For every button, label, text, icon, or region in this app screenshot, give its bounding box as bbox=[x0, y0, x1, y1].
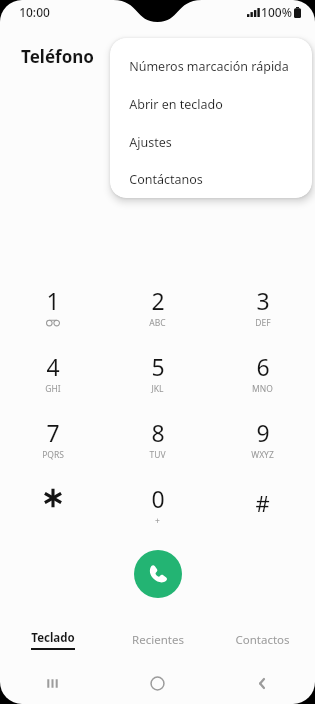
staticText: 100% bbox=[261, 4, 292, 20]
staticText: ABC bbox=[149, 317, 166, 329]
staticText: 5 bbox=[151, 351, 165, 382]
staticText: # bbox=[255, 488, 270, 518]
staticText: TUV bbox=[149, 449, 166, 461]
staticText: WXYZ bbox=[251, 449, 274, 461]
button[interactable]: 0 bbox=[105, 474, 210, 540]
staticText: PQRS bbox=[42, 449, 64, 461]
button[interactable]: Contáctanos bbox=[110, 161, 312, 198]
button[interactable] bbox=[0, 474, 105, 540]
button[interactable]: Recientes bbox=[105, 626, 210, 654]
staticText: MNO bbox=[252, 383, 273, 395]
staticText: 6 bbox=[256, 351, 270, 382]
staticText: 3 bbox=[256, 285, 270, 316]
staticText: 0 bbox=[151, 483, 165, 514]
button[interactable]: 5 bbox=[105, 342, 210, 408]
staticText: 10:00 bbox=[19, 4, 50, 20]
button[interactable]: Call bbox=[134, 550, 182, 598]
staticText: 7 bbox=[46, 417, 60, 448]
button[interactable]: Números marcación rápida bbox=[110, 47, 312, 85]
staticText: Teclado bbox=[31, 630, 75, 646]
staticText: Recientes bbox=[132, 632, 184, 648]
button[interactable]: 1 bbox=[0, 276, 105, 342]
button[interactable]: 4 bbox=[0, 342, 105, 408]
button[interactable]: Home bbox=[105, 662, 210, 704]
button[interactable]: 7 bbox=[0, 408, 105, 474]
staticText: JKL bbox=[151, 383, 164, 395]
staticText: Contactos bbox=[235, 632, 290, 648]
staticText: Teléfono bbox=[21, 45, 94, 68]
staticText: 2 bbox=[151, 285, 165, 316]
button[interactable]: 2 bbox=[105, 276, 210, 342]
staticText: GHI bbox=[45, 383, 61, 395]
staticText: + bbox=[155, 515, 160, 527]
button[interactable]: Recents bbox=[0, 662, 105, 704]
button[interactable]: Back bbox=[210, 662, 315, 704]
button[interactable]: 8 bbox=[105, 408, 210, 474]
staticText: Abrir en teclado bbox=[129, 96, 223, 113]
staticText: 1 bbox=[46, 285, 60, 316]
button[interactable]: 9 bbox=[210, 408, 315, 474]
button[interactable]: Teclado bbox=[0, 626, 105, 654]
staticText: Contáctanos bbox=[129, 171, 203, 188]
staticText: DEF bbox=[255, 317, 271, 329]
staticText: Números marcación rápida bbox=[129, 58, 289, 75]
button[interactable]: Abrir en teclado bbox=[110, 85, 312, 123]
button[interactable]: 3 bbox=[210, 276, 315, 342]
button[interactable]: Contactos bbox=[210, 626, 315, 654]
button[interactable]: # bbox=[210, 474, 315, 540]
staticText: Ajustes bbox=[129, 134, 172, 151]
button[interactable]: 6 bbox=[210, 342, 315, 408]
button[interactable]: Ajustes bbox=[110, 123, 312, 161]
staticText: 9 bbox=[256, 417, 270, 448]
staticText: 8 bbox=[151, 417, 165, 448]
staticText: 4 bbox=[46, 351, 60, 382]
